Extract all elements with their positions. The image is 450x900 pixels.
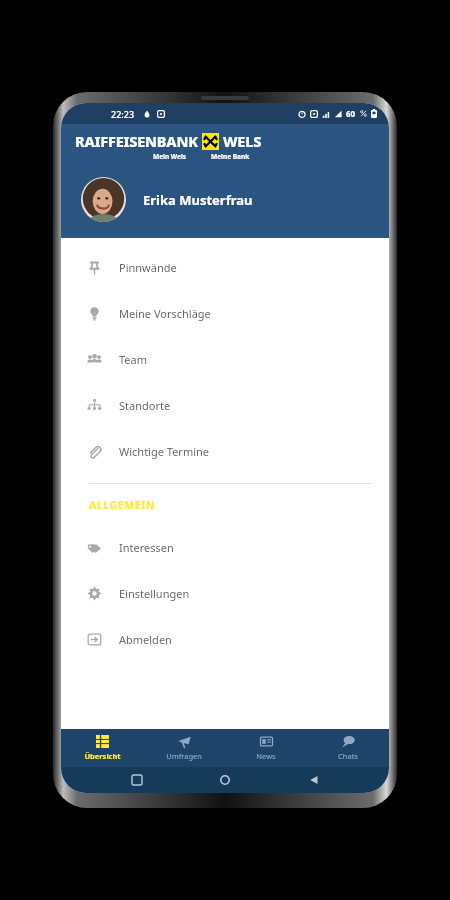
button[interactable]: Interessen [61, 524, 389, 570]
staticText: ALLGEMEIN [89, 498, 156, 512]
staticText: Pinnwände [119, 260, 177, 275]
staticText: Abmelden [119, 632, 172, 647]
button[interactable]: Übersicht [61, 729, 143, 767]
staticText: Interessen [119, 540, 174, 555]
staticText: Wichtige Termine [119, 444, 210, 459]
staticText: Umfragen [166, 751, 202, 761]
staticText: Chats [338, 751, 358, 761]
staticText: Meine Vorschläge [119, 306, 211, 321]
button[interactable]: Pinnwände [61, 244, 389, 290]
button[interactable]: Team [61, 336, 389, 382]
button[interactable]: Wichtige Termine [61, 428, 389, 474]
button[interactable]: Chats [307, 729, 389, 767]
staticText: Team [119, 352, 148, 367]
button[interactable]: News [225, 729, 307, 767]
button[interactable]: Abmelden [61, 616, 389, 662]
button[interactable]: Recent apps [124, 767, 150, 793]
button[interactable]: Home [212, 767, 238, 793]
staticText: Mein Wels [153, 152, 187, 161]
staticText: Meine Bank [211, 152, 250, 161]
staticText: 22:23 [111, 108, 135, 120]
staticText: Einstellungen [119, 586, 190, 601]
staticText: Standorte [119, 398, 171, 413]
staticText: News [256, 751, 276, 761]
button[interactable]: Back [301, 767, 327, 793]
staticText: Übersicht [84, 751, 121, 761]
staticText: WELS [223, 131, 262, 151]
button[interactable]: Standorte [61, 382, 389, 428]
staticText: RAIFFEISENBANK [75, 131, 198, 151]
button[interactable]: Einstellungen [61, 570, 389, 616]
staticText: Erika Musterfrau [143, 191, 253, 209]
button[interactable]: Meine Vorschläge [61, 290, 389, 336]
button[interactable]: Erika Musterfrau [61, 173, 389, 226]
button[interactable]: Umfragen [143, 729, 225, 767]
staticText: 60 [346, 108, 356, 119]
